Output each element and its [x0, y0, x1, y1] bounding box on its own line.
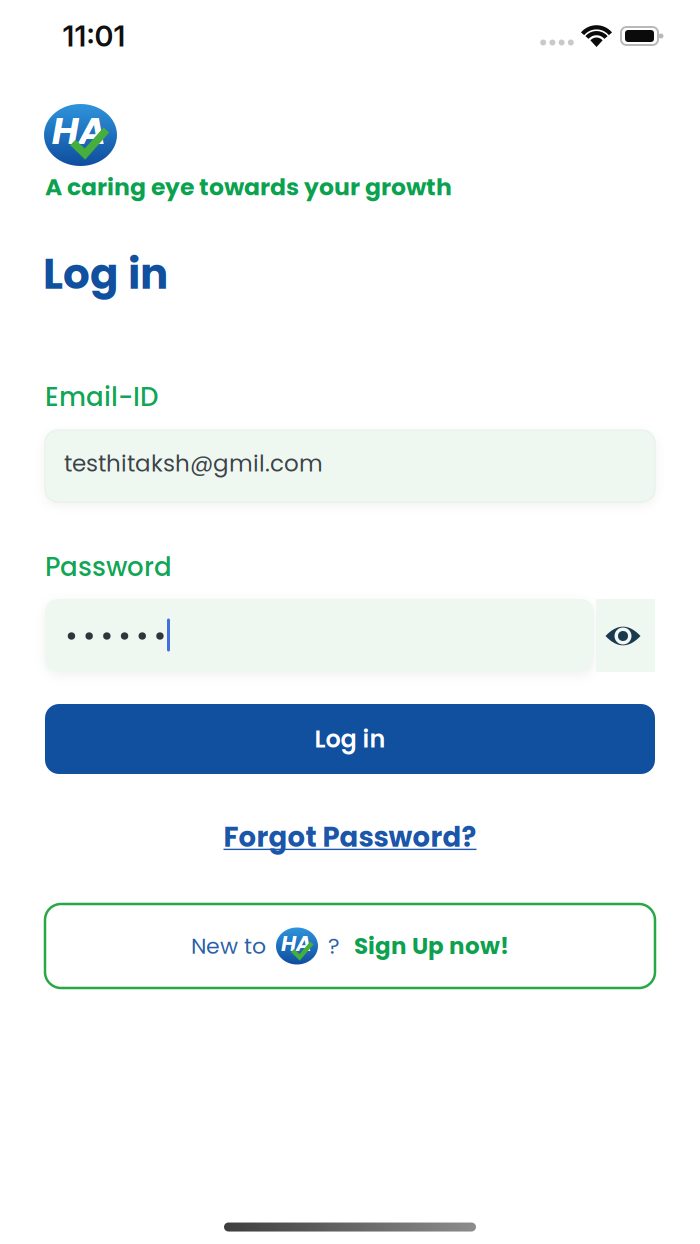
- button[interactable]: Forgot Password?: [223, 818, 476, 856]
- staticText: Email-ID: [45, 379, 158, 415]
- staticText: Log in: [43, 245, 168, 303]
- staticText: testhitaksh@gmil.com: [64, 447, 323, 480]
- staticText: ?: [328, 931, 340, 961]
- staticText: Log in: [314, 722, 385, 756]
- staticText: New to: [191, 931, 266, 961]
- button[interactable]: Log in: [45, 704, 655, 774]
- staticText: Sign Up now!: [354, 930, 509, 962]
- staticText: Password: [45, 549, 172, 585]
- staticText: HA: [281, 929, 311, 958]
- staticText: 11:01: [62, 18, 125, 54]
- staticText: HA: [52, 105, 106, 157]
- staticText: A caring eye towards your growth: [45, 171, 452, 203]
- staticText: Forgot Password?: [223, 818, 476, 856]
- button[interactable]: Show password: [596, 609, 650, 663]
- button[interactable]: New to: [45, 904, 655, 988]
